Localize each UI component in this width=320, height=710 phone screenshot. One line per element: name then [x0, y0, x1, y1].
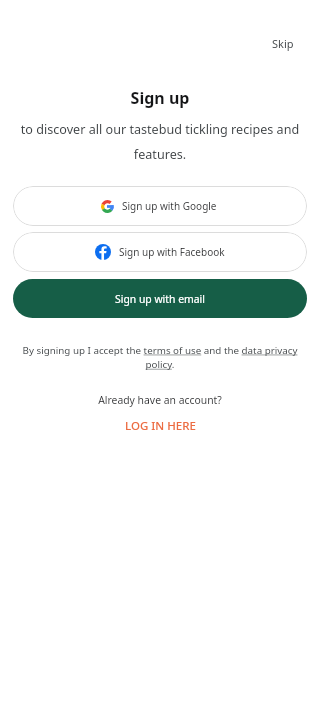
button[interactable]: Sign up with Google: [13, 186, 307, 226]
staticText: Sign up with email: [115, 292, 205, 306]
staticText: Sign up: [0, 87, 320, 109]
button[interactable]: Sign up with Facebook: [13, 232, 307, 272]
staticText: By signing up I accept the terms of use …: [22, 344, 298, 371]
staticText: Skip: [272, 36, 294, 51]
button[interactable]: LOG IN HERE: [115, 415, 206, 437]
button[interactable]: Skip: [262, 26, 304, 61]
staticText: to discover all our tastebud tickling re…: [14, 121, 306, 163]
staticText: Already have an account?: [0, 393, 320, 407]
button[interactable]: Sign up with email: [13, 279, 307, 318]
staticText: Sign up with Facebook: [119, 245, 225, 259]
staticText: Sign up with Google: [122, 199, 217, 213]
staticText: LOG IN HERE: [125, 418, 196, 434]
